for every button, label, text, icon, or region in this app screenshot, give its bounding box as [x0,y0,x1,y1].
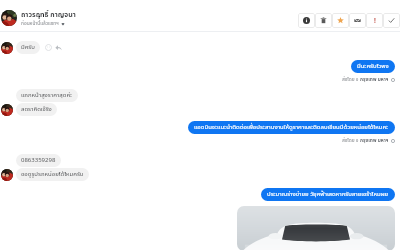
button[interactable]: ขอดูรูปรถหน่อยได้ไหมครับ [16,168,89,181]
staticText: ลดราคิดเจ๊ริง [21,105,52,114]
button[interactable]: มีนะครับไวพจ [351,60,395,73]
staticText: ! [374,16,376,25]
staticText: ส่งโดย ๑ [342,137,360,144]
button[interactable]: React [45,44,52,51]
staticText: 0863359298 [21,156,56,165]
button[interactable]: Star [332,13,349,28]
staticText: ถาวรฤทธิ์ กาญจนา [21,10,76,21]
button[interactable]: Delete [315,13,332,28]
button[interactable]: ลดราคิดเจ๊ริง [16,103,57,116]
button[interactable]: 0863359298 [16,154,61,167]
button[interactable]: Done [383,13,400,28]
staticText: ส่งโดย ๑ [342,76,360,83]
staticText: ก่อนหน้านี้แล้วแชทฯ [21,20,59,27]
button[interactable]: แอดมินจะแนะนำติดต่อเพื่อประสานงานให้ดูรา… [188,121,395,134]
staticText: กรุงเทพ มหาฯ [360,137,389,144]
staticText: มีนะครับไวพจ [357,62,389,71]
staticText: กรุงเทพ มหาฯ [360,76,389,83]
button[interactable]: Photo of a car [237,206,395,250]
button[interactable]: Mail [349,13,366,28]
staticText: แถกหน้าสูงราคาสุดค่ะ [21,91,73,100]
button[interactable]: Info [298,13,315,28]
staticText: แอดมินจะแนะนำติดต่อเพื่อประสานงานให้ดูรา… [194,123,389,132]
staticText: มีครับ [21,43,35,52]
button[interactable]: มีครับ [16,41,40,54]
button[interactable]: ประมาณร่างข่ายย วัยุคฟ้าเสดหากรับสายเขร้… [261,188,395,201]
button[interactable]: Reply [55,44,62,51]
button[interactable]: แถกหน้าสูงราคาสุดค่ะ [16,89,78,102]
staticText: ประมาณร่างข่ายย วัยุคฟ้าเสดหากรับสายเขร้… [267,190,389,199]
staticText: ขอดูรูปรถหน่อยได้ไหมครับ [21,170,84,179]
button[interactable]: Report [366,13,383,28]
